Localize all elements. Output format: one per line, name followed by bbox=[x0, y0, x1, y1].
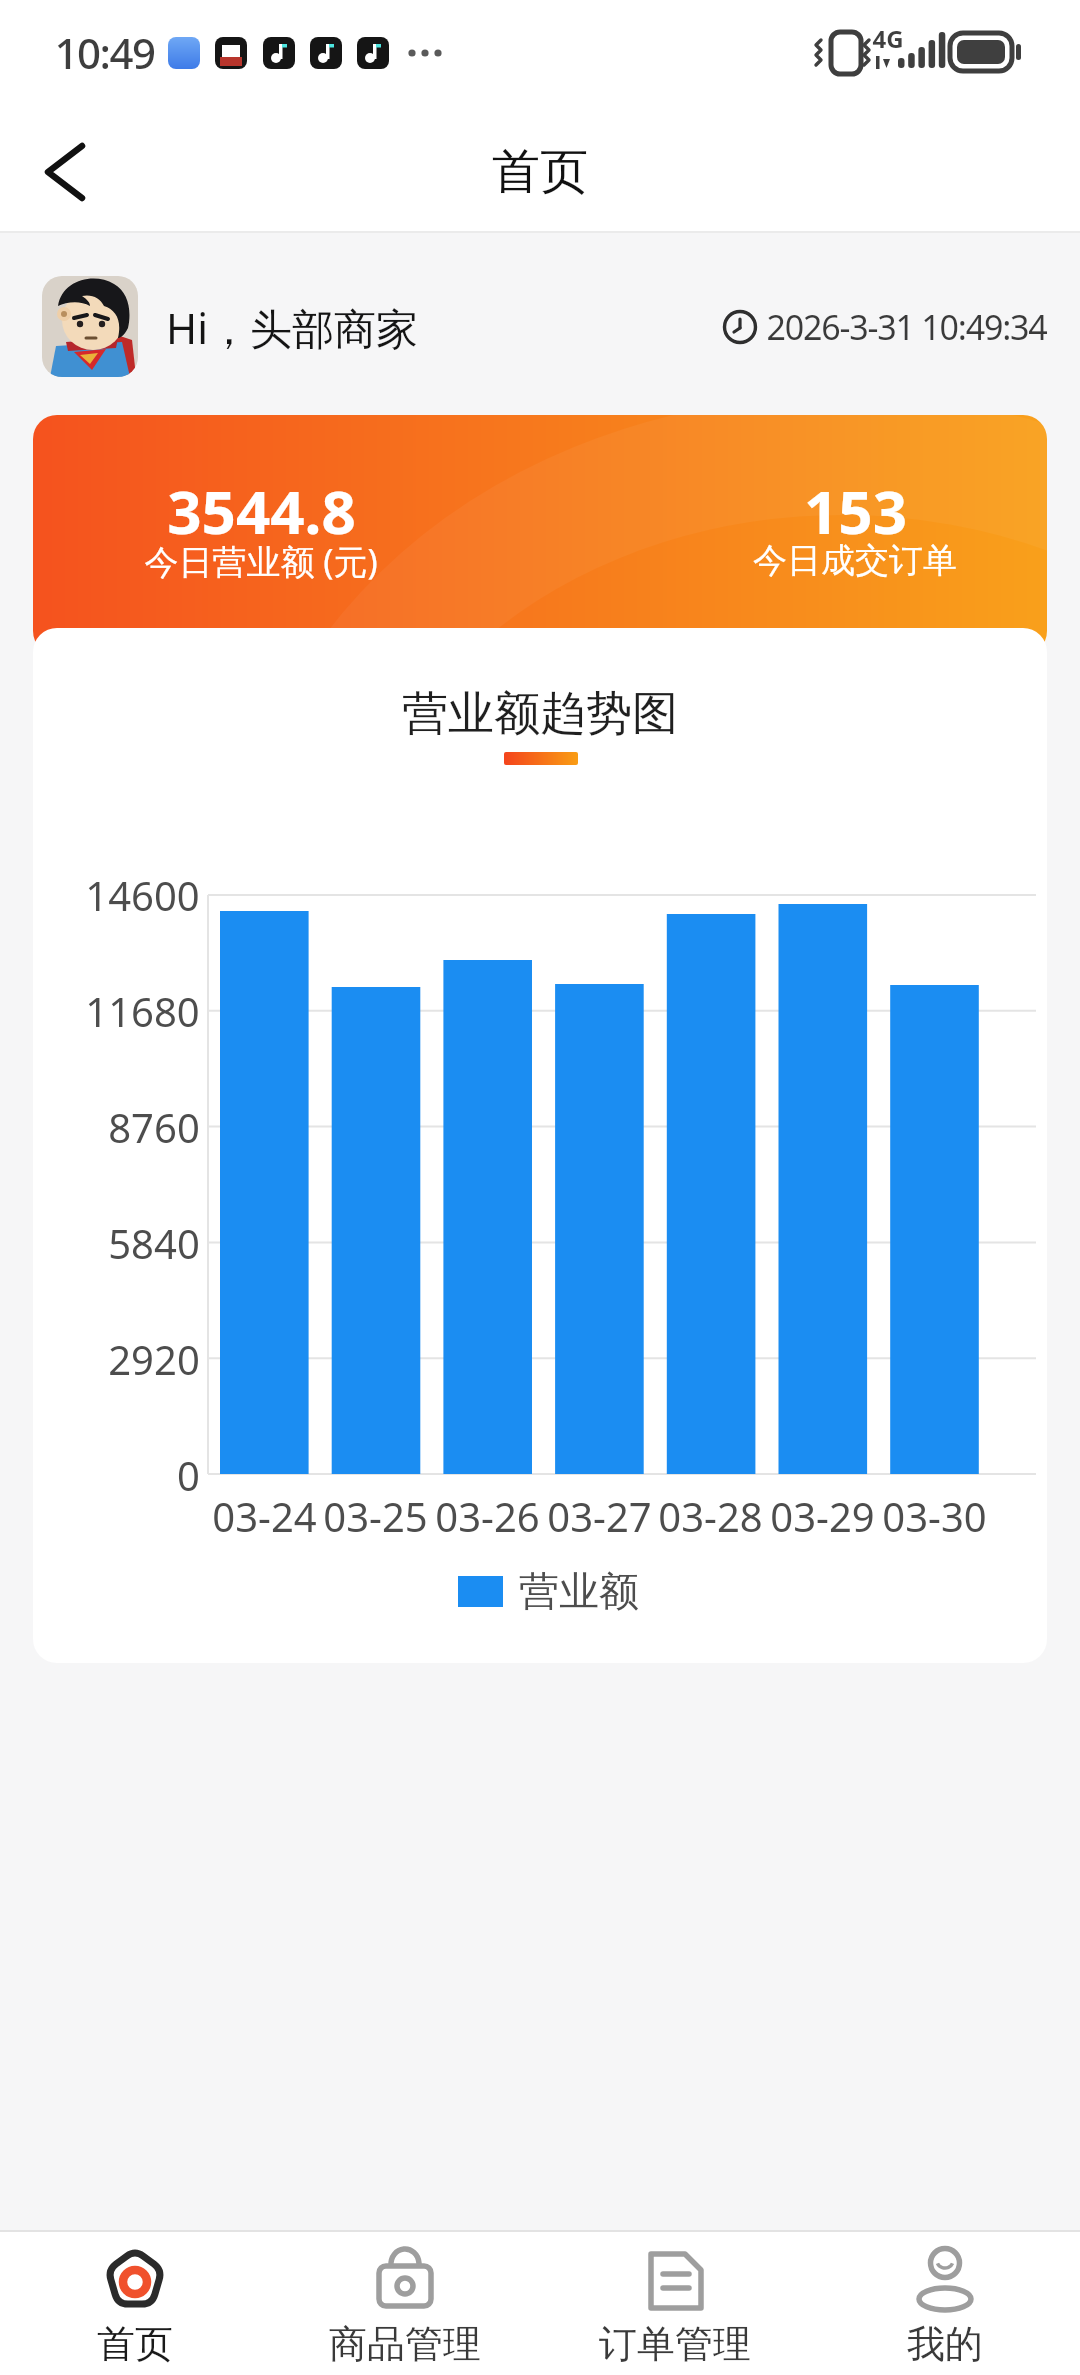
staticText: 4G bbox=[872, 22, 904, 55]
staticText: 03-25 bbox=[323, 1489, 428, 1543]
button[interactable]: 我的 bbox=[845, 2234, 1045, 2374]
button[interactable] bbox=[33, 415, 1047, 655]
staticText: 8760 bbox=[108, 1100, 200, 1154]
staticText: 首页 bbox=[492, 142, 588, 202]
button[interactable]: 首页 bbox=[35, 2234, 235, 2374]
button[interactable]: 订单管理 bbox=[575, 2234, 775, 2374]
staticText: 03-24 bbox=[212, 1489, 317, 1543]
staticText: 订单管理 bbox=[599, 2320, 751, 2366]
button[interactable] bbox=[20, 130, 110, 214]
staticText: 2920 bbox=[108, 1332, 200, 1386]
staticText: 营业额趋势图 bbox=[402, 685, 678, 743]
staticText: 0 bbox=[177, 1448, 200, 1502]
staticText: 10:49 bbox=[54, 24, 155, 80]
staticText: 11680 bbox=[85, 984, 200, 1038]
staticText: 03-29 bbox=[770, 1489, 875, 1543]
button[interactable] bbox=[42, 276, 138, 377]
staticText: 首页 bbox=[97, 2320, 173, 2366]
staticText: 我的 bbox=[907, 2320, 983, 2366]
staticText: 今日成交订单 bbox=[753, 539, 957, 582]
staticText: 商品管理 bbox=[329, 2320, 481, 2366]
button[interactable]: 商品管理 bbox=[305, 2234, 505, 2374]
staticText: 2026-3-31 10:49:34 bbox=[766, 304, 1047, 350]
staticText: 3544.8 bbox=[167, 470, 356, 546]
staticText: 03-28 bbox=[658, 1489, 763, 1543]
staticText: 今日营业额 (元) bbox=[144, 538, 378, 582]
staticText: 153 bbox=[804, 470, 907, 546]
staticText: 03-27 bbox=[547, 1489, 652, 1543]
staticText: 5840 bbox=[108, 1216, 200, 1270]
staticText: 营业额 bbox=[519, 1566, 639, 1616]
staticText: 03-26 bbox=[435, 1489, 540, 1543]
staticText: Hi，头部商家 bbox=[166, 299, 418, 356]
staticText: 03-30 bbox=[882, 1489, 987, 1543]
staticText: 14600 bbox=[85, 868, 200, 922]
